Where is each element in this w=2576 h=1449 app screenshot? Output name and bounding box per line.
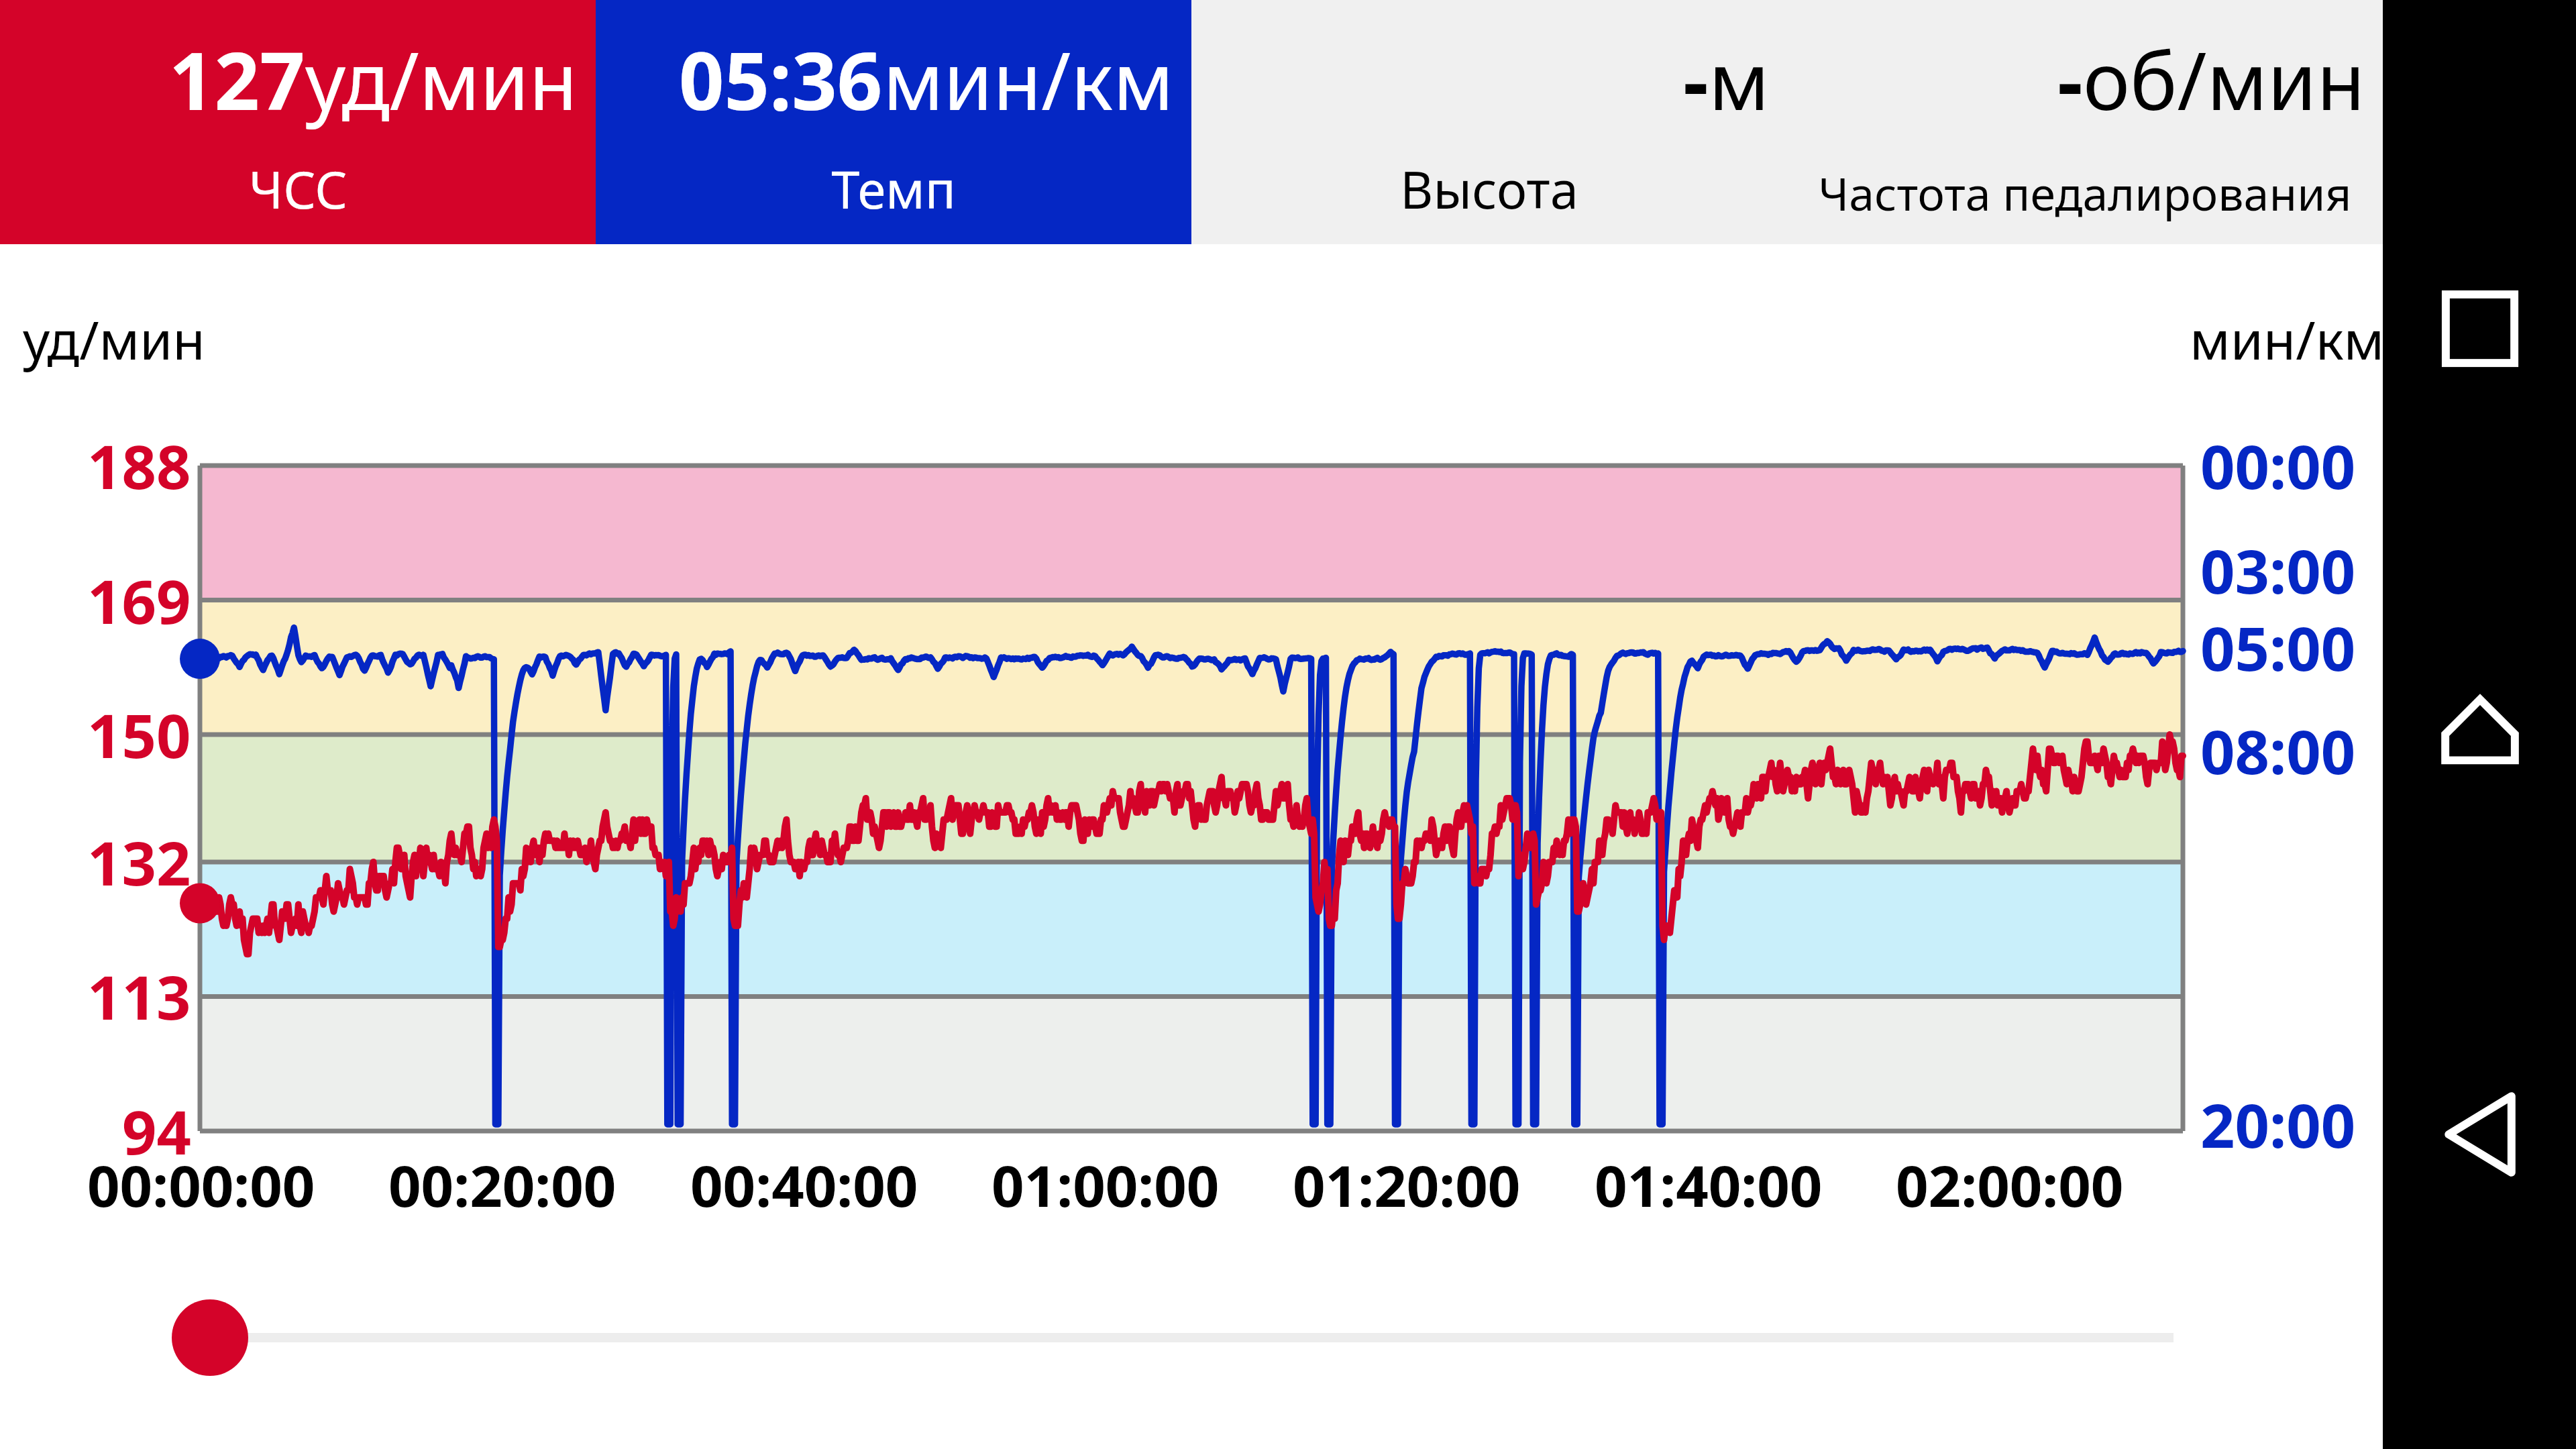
staticText: 00:40:00 xyxy=(690,1146,918,1224)
staticText: Частота педалирования xyxy=(1818,162,2352,224)
staticText: мин/км xyxy=(2190,303,2385,376)
staticText: 127 xyxy=(169,25,305,133)
button[interactable]: Seek position xyxy=(165,1287,267,1389)
staticText: 113 xyxy=(87,955,191,1038)
staticText: об/мин xyxy=(2083,25,2365,133)
staticText: - xyxy=(1683,25,1709,133)
staticText: 00:00:00 xyxy=(87,1146,315,1224)
staticText: 05:00 xyxy=(2200,606,2356,689)
staticText: 94 xyxy=(122,1090,191,1173)
staticText: 169 xyxy=(87,559,191,642)
staticText: 132 xyxy=(87,821,191,904)
staticText: 03:00 xyxy=(2200,529,2356,612)
staticText: уд/мин xyxy=(305,25,578,133)
staticText: Темп xyxy=(831,154,956,224)
staticText: 05:36 xyxy=(679,25,883,133)
staticText: 150 xyxy=(87,694,191,776)
staticText: 00:00 xyxy=(2200,425,2356,507)
button[interactable]: 05:36 xyxy=(596,0,1191,244)
button[interactable]: 127 xyxy=(0,0,596,244)
button[interactable]: Home xyxy=(2432,682,2528,778)
staticText: 188 xyxy=(87,425,191,507)
staticText: м xyxy=(1709,25,1770,133)
button[interactable]: - xyxy=(1191,0,1787,244)
staticText: 01:40:00 xyxy=(1595,1146,1823,1224)
staticText: 08:00 xyxy=(2200,710,2356,792)
staticText: 20:00 xyxy=(2200,1083,2356,1166)
button[interactable]: Heart rate and pace chart xyxy=(200,466,2183,1131)
staticText: 02:00:00 xyxy=(1896,1146,2124,1224)
button[interactable]: Back xyxy=(2432,1086,2528,1183)
staticText: 01:20:00 xyxy=(1293,1146,1521,1224)
staticText: - xyxy=(2057,25,2083,133)
staticText: уд/мин xyxy=(23,303,205,376)
staticText: ЧСС xyxy=(249,154,347,224)
button[interactable]: - xyxy=(1787,0,2383,244)
staticText: 01:00:00 xyxy=(991,1146,1220,1224)
button[interactable]: Recent apps xyxy=(2432,280,2528,377)
staticText: 00:20:00 xyxy=(388,1146,616,1224)
staticText: Высота xyxy=(1400,154,1578,224)
staticText: мин/км xyxy=(883,25,1174,133)
